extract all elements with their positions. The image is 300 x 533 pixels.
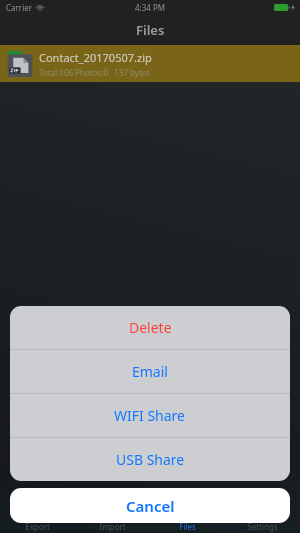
staticText: Settings	[247, 521, 278, 532]
button[interactable]: Settings	[225, 516, 300, 533]
button[interactable]: WIFI Share	[10, 394, 290, 437]
staticText: Carrier	[6, 2, 33, 13]
staticText: 4:34 PM	[135, 2, 166, 13]
button[interactable]: Import	[75, 516, 150, 533]
staticText: Total:106 Photos:0 137 bytes	[39, 67, 151, 78]
button[interactable]: Delete	[10, 306, 290, 349]
staticText: Email	[132, 362, 168, 381]
button[interactable]: Email	[10, 350, 290, 393]
staticText: Files	[179, 521, 196, 532]
staticText: Contact_20170507.zip	[39, 50, 152, 65]
button[interactable]: Contact_20170507.zip	[0, 45, 300, 82]
button[interactable]: Files	[150, 516, 225, 533]
staticText: Files	[136, 21, 165, 39]
staticText: Import	[99, 521, 126, 532]
staticText: Cancel	[126, 496, 175, 516]
staticText: USB Share	[116, 450, 185, 469]
staticText: Delete	[129, 318, 172, 337]
button[interactable]: Export	[0, 516, 75, 533]
staticText: Export	[25, 521, 50, 532]
staticText: WIFI Share	[114, 406, 186, 425]
button[interactable]: USB Share	[10, 438, 290, 481]
button[interactable]: Cancel	[10, 488, 290, 523]
